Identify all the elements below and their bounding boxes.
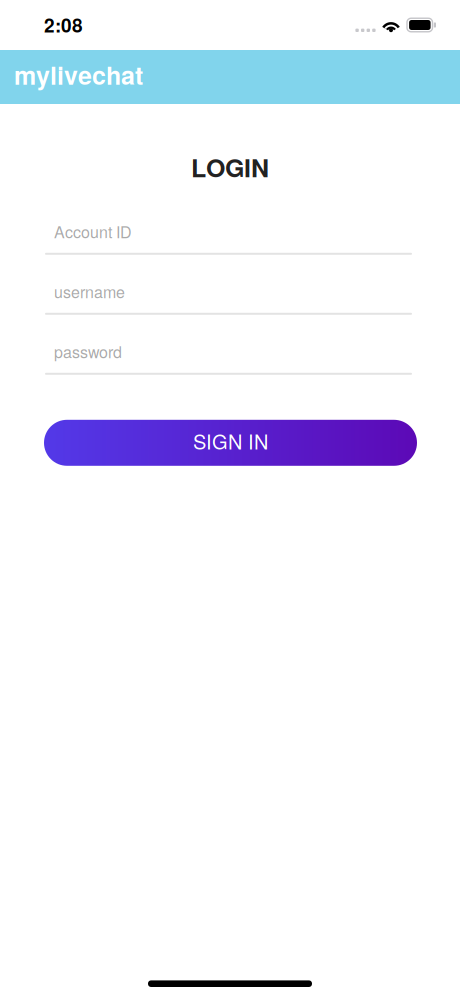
- staticText: LOGIN: [191, 149, 269, 185]
- staticText: username: [54, 280, 125, 303]
- staticText: password: [54, 340, 122, 363]
- staticText: Account ID: [54, 220, 132, 243]
- staticText: mylivechat: [14, 57, 143, 92]
- button[interactable]: SIGN IN: [44, 420, 417, 466]
- staticText: SIGN IN: [193, 426, 268, 455]
- staticText: 2:08: [44, 11, 83, 38]
